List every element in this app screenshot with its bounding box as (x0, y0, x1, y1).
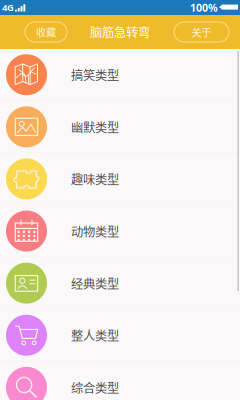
button[interactable]: 综合类型 (0, 362, 240, 400)
staticText: 100% (190, 0, 218, 15)
staticText: 关于 (191, 25, 211, 39)
staticText: 综合类型 (71, 378, 119, 396)
staticText: 整人类型 (71, 326, 119, 344)
staticText: 经典类型 (71, 274, 119, 292)
staticText: 动物类型 (71, 222, 119, 240)
button[interactable]: 搞笑类型 (0, 49, 240, 100)
button[interactable]: 经典类型 (0, 257, 240, 309)
button[interactable]: 关于 (174, 22, 229, 42)
button[interactable]: 趣味类型 (0, 153, 240, 205)
button[interactable]: 幽默类型 (0, 101, 240, 153)
button[interactable]: 整人类型 (0, 309, 240, 361)
button[interactable]: 收藏 (25, 22, 67, 42)
staticText: 搞笑类型 (71, 66, 119, 84)
staticText: 趣味类型 (71, 170, 119, 188)
button[interactable]: 动物类型 (0, 205, 240, 257)
staticText: 幽默类型 (71, 118, 119, 136)
staticText: 收藏 (36, 25, 56, 39)
staticText: 脑筋急转弯 (90, 23, 150, 41)
staticText: 4G (2, 1, 14, 14)
